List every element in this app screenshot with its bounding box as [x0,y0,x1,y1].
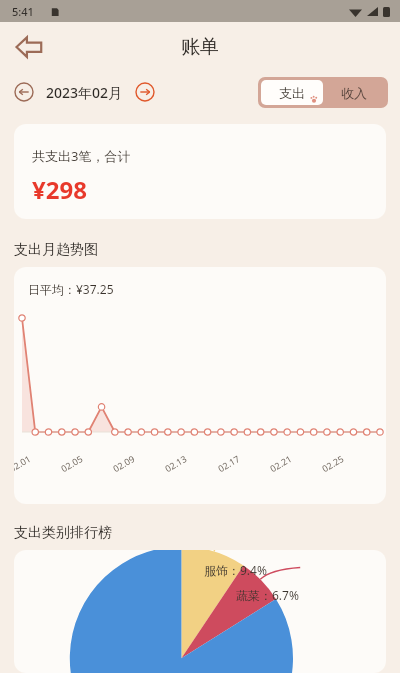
staticText: 共支出3笔，合计 [32,147,131,165]
staticText: 支出类别排行榜 [14,524,112,542]
staticText: 02.09 [111,452,137,474]
button[interactable]: 服饰：9.4% [14,550,386,673]
staticText: 02.25 [320,452,346,474]
staticText: 02.05 [59,452,85,474]
staticText: 蔬菜：6.7% [236,587,299,603]
button[interactable]: Back [10,28,48,66]
staticText: 支出月趋势图 [14,241,98,259]
staticText: 支出 [279,85,305,101]
staticText: 02.21 [268,452,294,474]
button[interactable]: Next month [135,82,155,102]
button[interactable]: 支出 [261,80,323,105]
staticText: 收入 [341,85,367,101]
button[interactable]: Previous month [14,82,34,102]
staticText: 5:41 [12,4,34,19]
staticText: 服饰：9.4% [204,562,267,578]
staticText: 账单 [181,35,219,59]
staticText: 2023年02月 [46,83,123,102]
button[interactable]: 收入 [323,80,385,105]
staticText: 02.17 [216,452,242,474]
staticText: 02.01 [14,452,33,474]
staticText: 02.13 [163,452,189,474]
button[interactable]: 日平均：¥37.25 [14,267,386,504]
staticText: ¥298 [32,173,87,206]
button[interactable]: 共支出3笔，合计 [14,124,386,219]
staticText: 日平均：¥37.25 [28,281,114,297]
